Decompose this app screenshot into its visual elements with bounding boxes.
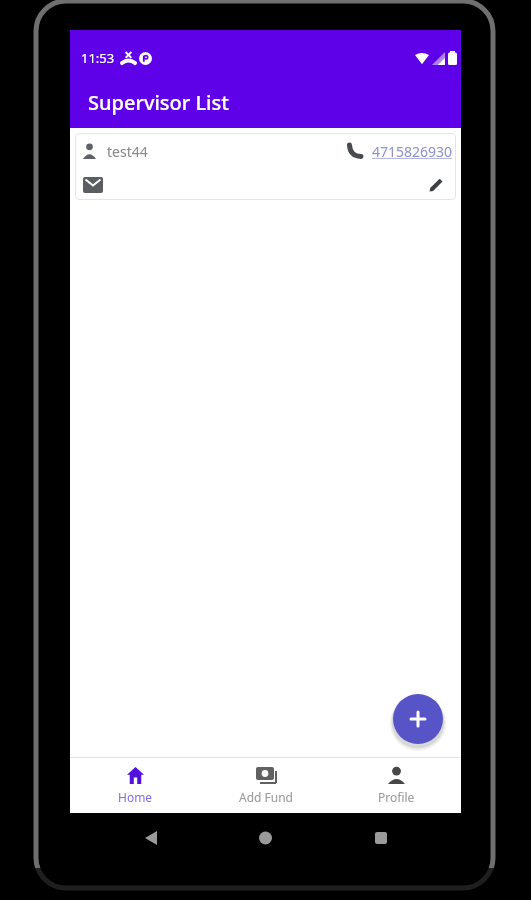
staticText: Profile (378, 789, 415, 805)
button[interactable]: Add Fund (201, 758, 331, 813)
button[interactable]: test44 (75, 133, 456, 200)
staticText: 4715826930 (372, 142, 453, 161)
button[interactable] (393, 694, 443, 744)
button[interactable]: Home (70, 758, 201, 813)
staticText: Home (118, 789, 153, 805)
button[interactable]: Profile (331, 758, 461, 813)
staticText: Supervisor List (88, 89, 229, 116)
staticText: test44 (107, 142, 148, 161)
staticText: 11:53 (81, 49, 115, 67)
staticText: Add Fund (239, 789, 293, 805)
